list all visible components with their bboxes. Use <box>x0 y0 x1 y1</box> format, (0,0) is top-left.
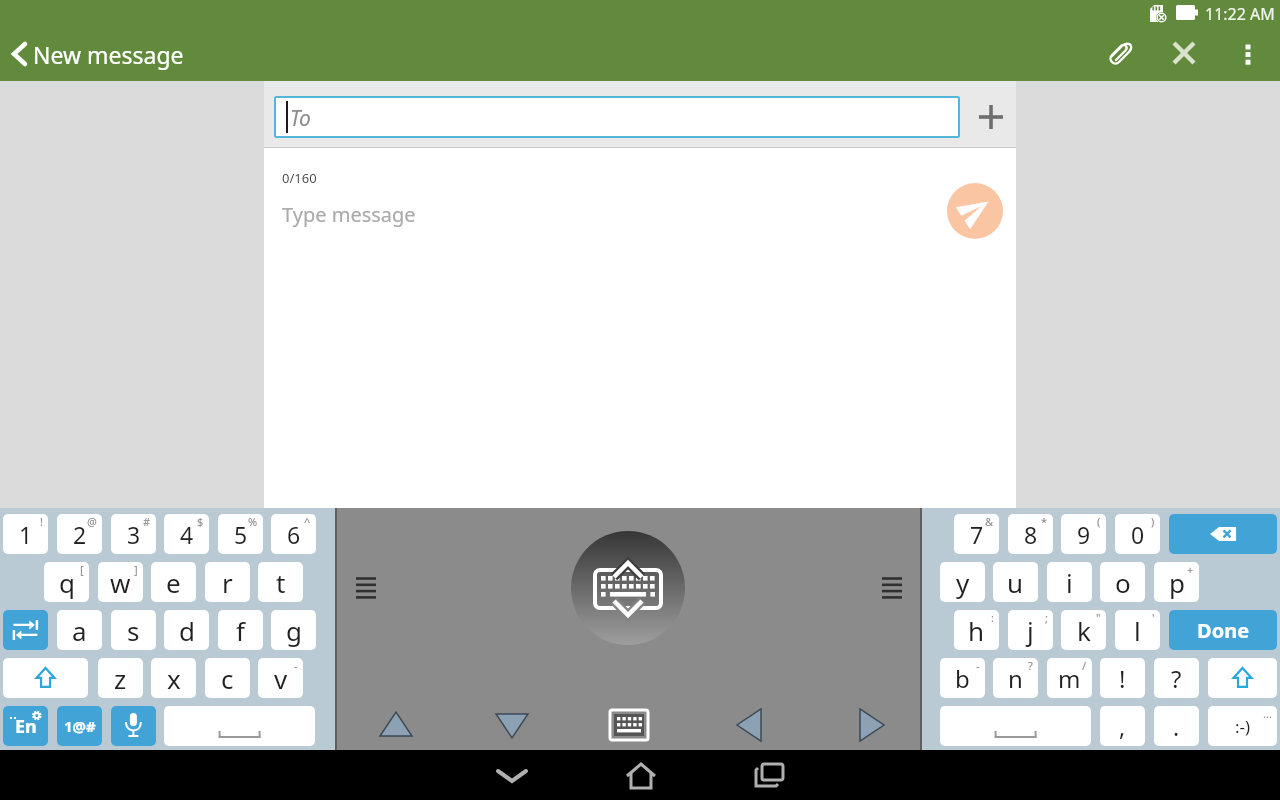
staticText: En <box>15 714 37 739</box>
button[interactable]: f <box>218 610 263 650</box>
staticText: i <box>1066 565 1073 600</box>
button[interactable]: 0 <box>1115 514 1160 554</box>
button[interactable]: :-) <box>1208 706 1277 746</box>
staticText: k <box>1077 613 1091 648</box>
button[interactable] <box>488 751 536 799</box>
staticText: ) <box>1151 514 1155 529</box>
button[interactable]: New message <box>0 31 200 77</box>
staticText: Type message <box>282 201 416 228</box>
staticText: 9 <box>1077 519 1091 550</box>
button[interactable]: 5 <box>218 514 263 554</box>
button[interactable] <box>1096 29 1144 77</box>
staticText: " <box>1096 610 1101 625</box>
staticText: y <box>956 565 970 600</box>
staticText: To <box>290 104 311 133</box>
button[interactable]: p <box>1154 562 1199 602</box>
button[interactable]: v <box>258 658 303 698</box>
button[interactable]: , <box>1100 706 1145 746</box>
button[interactable]: r <box>205 562 250 602</box>
button[interactable]: y <box>940 562 985 602</box>
button[interactable]: t <box>258 562 303 602</box>
button[interactable]: 4 <box>164 514 209 554</box>
button[interactable]: 1 <box>3 514 48 554</box>
staticText: New message <box>33 39 184 70</box>
button[interactable] <box>372 701 420 749</box>
button[interactable]: h <box>954 610 999 650</box>
button[interactable]: 1@# <box>57 706 102 746</box>
button[interactable]: l <box>1115 610 1160 650</box>
button[interactable]: d <box>164 610 209 650</box>
button[interactable]: b <box>940 658 985 698</box>
button[interactable] <box>940 706 1091 746</box>
staticText: 4 <box>180 519 194 550</box>
button[interactable]: ! <box>1100 658 1145 698</box>
button[interactable] <box>488 701 536 749</box>
staticText: x <box>167 661 181 696</box>
button[interactable] <box>1208 658 1277 698</box>
staticText: + <box>1187 562 1194 577</box>
button[interactable]: s <box>111 610 156 650</box>
staticText: ? <box>1028 658 1033 673</box>
staticText: 5 <box>234 519 248 550</box>
button[interactable] <box>605 701 653 749</box>
staticText: 3 <box>127 519 141 550</box>
staticText: m <box>1058 662 1081 695</box>
button[interactable] <box>745 751 793 799</box>
button[interactable] <box>3 658 88 698</box>
button[interactable]: x <box>151 658 196 698</box>
button[interactable]: g <box>271 610 316 650</box>
button[interactable]: 3 <box>111 514 156 554</box>
button[interactable] <box>1169 514 1277 554</box>
staticText: :-) <box>1235 715 1251 738</box>
button[interactable]: 2 <box>57 514 102 554</box>
button[interactable]: n <box>993 658 1038 698</box>
button[interactable]: z <box>98 658 143 698</box>
button[interactable]: To <box>274 96 960 138</box>
staticText: 7 <box>970 519 984 550</box>
button[interactable] <box>967 93 1015 141</box>
staticText: # <box>143 514 151 529</box>
button[interactable] <box>111 706 156 746</box>
button[interactable] <box>726 701 774 749</box>
staticText: p <box>1169 565 1185 600</box>
staticText: ' <box>1152 610 1155 625</box>
button[interactable]: m <box>1047 658 1092 698</box>
button[interactable]: j <box>1008 610 1053 650</box>
staticText: 2 <box>73 519 87 550</box>
staticText: & <box>985 514 994 529</box>
button[interactable]: e <box>151 562 196 602</box>
button[interactable]: 9 <box>1061 514 1106 554</box>
staticText: ] <box>134 562 138 577</box>
staticText: v <box>274 661 288 696</box>
button[interactable]: Done <box>1169 610 1277 650</box>
button[interactable]: c <box>205 658 250 698</box>
button[interactable]: q <box>44 562 89 602</box>
button[interactable]: . <box>1154 706 1199 746</box>
button[interactable] <box>947 183 1003 239</box>
staticText: : <box>991 610 994 625</box>
button[interactable]: 8 <box>1008 514 1053 554</box>
staticText: d <box>179 613 195 648</box>
staticText: ! <box>40 514 43 529</box>
button[interactable]: a <box>57 610 102 650</box>
button[interactable]: En <box>3 706 48 746</box>
button[interactable]: k <box>1061 610 1106 650</box>
button[interactable]: i <box>1047 562 1092 602</box>
button[interactable]: 6 <box>271 514 316 554</box>
button[interactable] <box>3 610 48 650</box>
staticText: ... <box>1263 706 1272 721</box>
button[interactable] <box>164 706 315 746</box>
staticText: ! <box>1119 662 1126 695</box>
staticText: o <box>1115 565 1131 600</box>
button[interactable]: ? <box>1154 658 1199 698</box>
button[interactable]: u <box>993 562 1038 602</box>
button[interactable]: o <box>1100 562 1145 602</box>
button[interactable] <box>1224 29 1272 77</box>
button[interactable] <box>571 531 685 645</box>
button[interactable]: 7 <box>954 514 999 554</box>
button[interactable]: w <box>98 562 143 602</box>
button[interactable] <box>617 751 665 799</box>
button[interactable] <box>1160 29 1208 77</box>
button[interactable] <box>847 701 895 749</box>
staticText: ( <box>1097 514 1101 529</box>
